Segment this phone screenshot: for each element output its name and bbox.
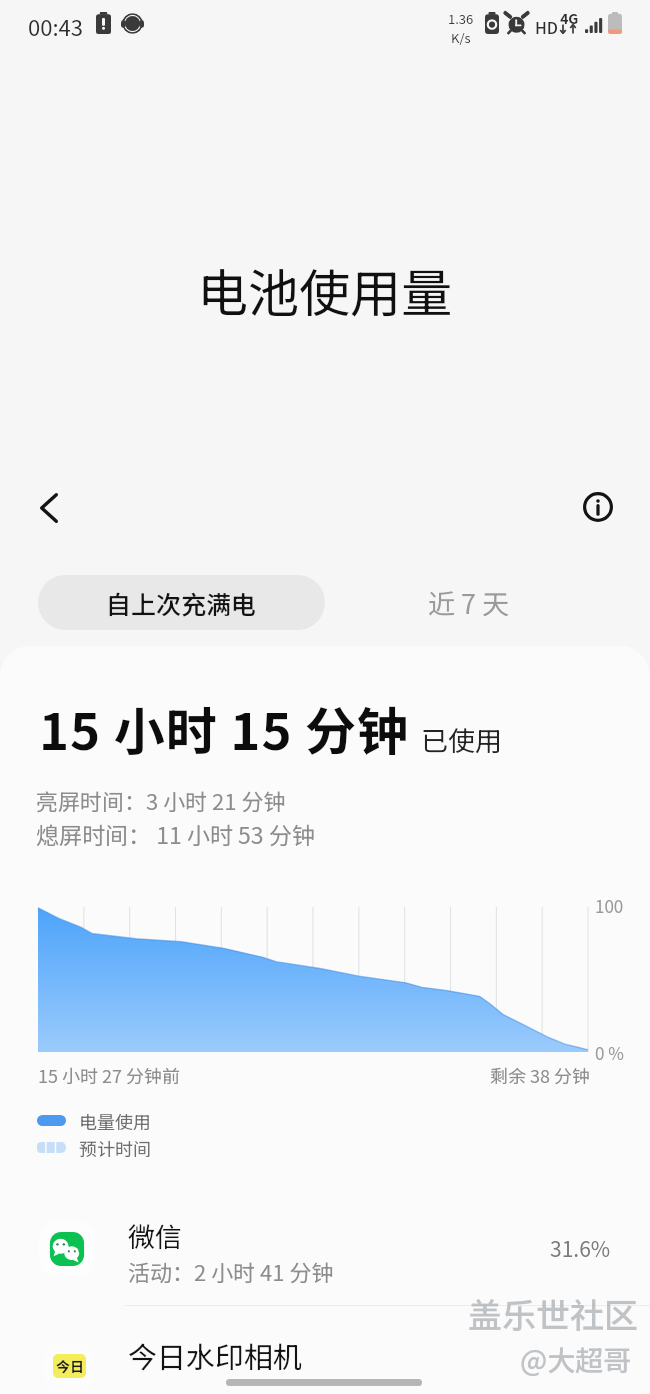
staticText: 亮屏时间：3 小时 21 分钟: [36, 784, 286, 816]
staticText: 1.36: [448, 9, 474, 28]
staticText: K/s: [451, 28, 471, 47]
staticText: 活动：2 小时 41 分钟: [128, 1255, 334, 1287]
staticText: 电池使用量: [197, 253, 453, 327]
staticText: 电量使用: [79, 1108, 151, 1132]
staticText: 预计时间: [79, 1135, 151, 1159]
staticText: @大超哥: [520, 1339, 632, 1380]
staticText: 31.6%: [550, 1233, 611, 1263]
staticText: 15 小时 27 分钟前: [38, 1062, 181, 1088]
staticText: 熄屏时间： 11 小时 53 分钟: [36, 817, 315, 850]
button[interactable]: 微信: [0, 1198, 650, 1303]
staticText: 100: [595, 893, 624, 918]
staticText: HD: [535, 15, 559, 38]
staticText: 0 %: [595, 1040, 624, 1065]
staticText: 剩余 38 分钟: [490, 1062, 591, 1088]
button[interactable]: 近 7 天: [355, 575, 582, 630]
button[interactable]: 今日: [0, 1312, 650, 1394]
button[interactable]: Back: [21, 480, 77, 536]
staticText: 盖乐世社区: [468, 1289, 638, 1338]
staticText: 00:43: [28, 10, 83, 42]
staticText: 微信: [128, 1216, 182, 1255]
button[interactable]: Information: [570, 479, 626, 535]
staticText: 已使用: [421, 720, 502, 759]
button[interactable]: 自上次充满电: [38, 575, 325, 630]
staticText: 15 小时 15 分钟: [39, 691, 410, 765]
staticText: 自上次充满电: [106, 585, 257, 621]
staticText: 4G: [560, 8, 579, 28]
staticText: 今日: [56, 1356, 84, 1376]
staticText: 近 7 天: [428, 583, 510, 622]
staticText: 今日水印相机: [128, 1334, 303, 1376]
